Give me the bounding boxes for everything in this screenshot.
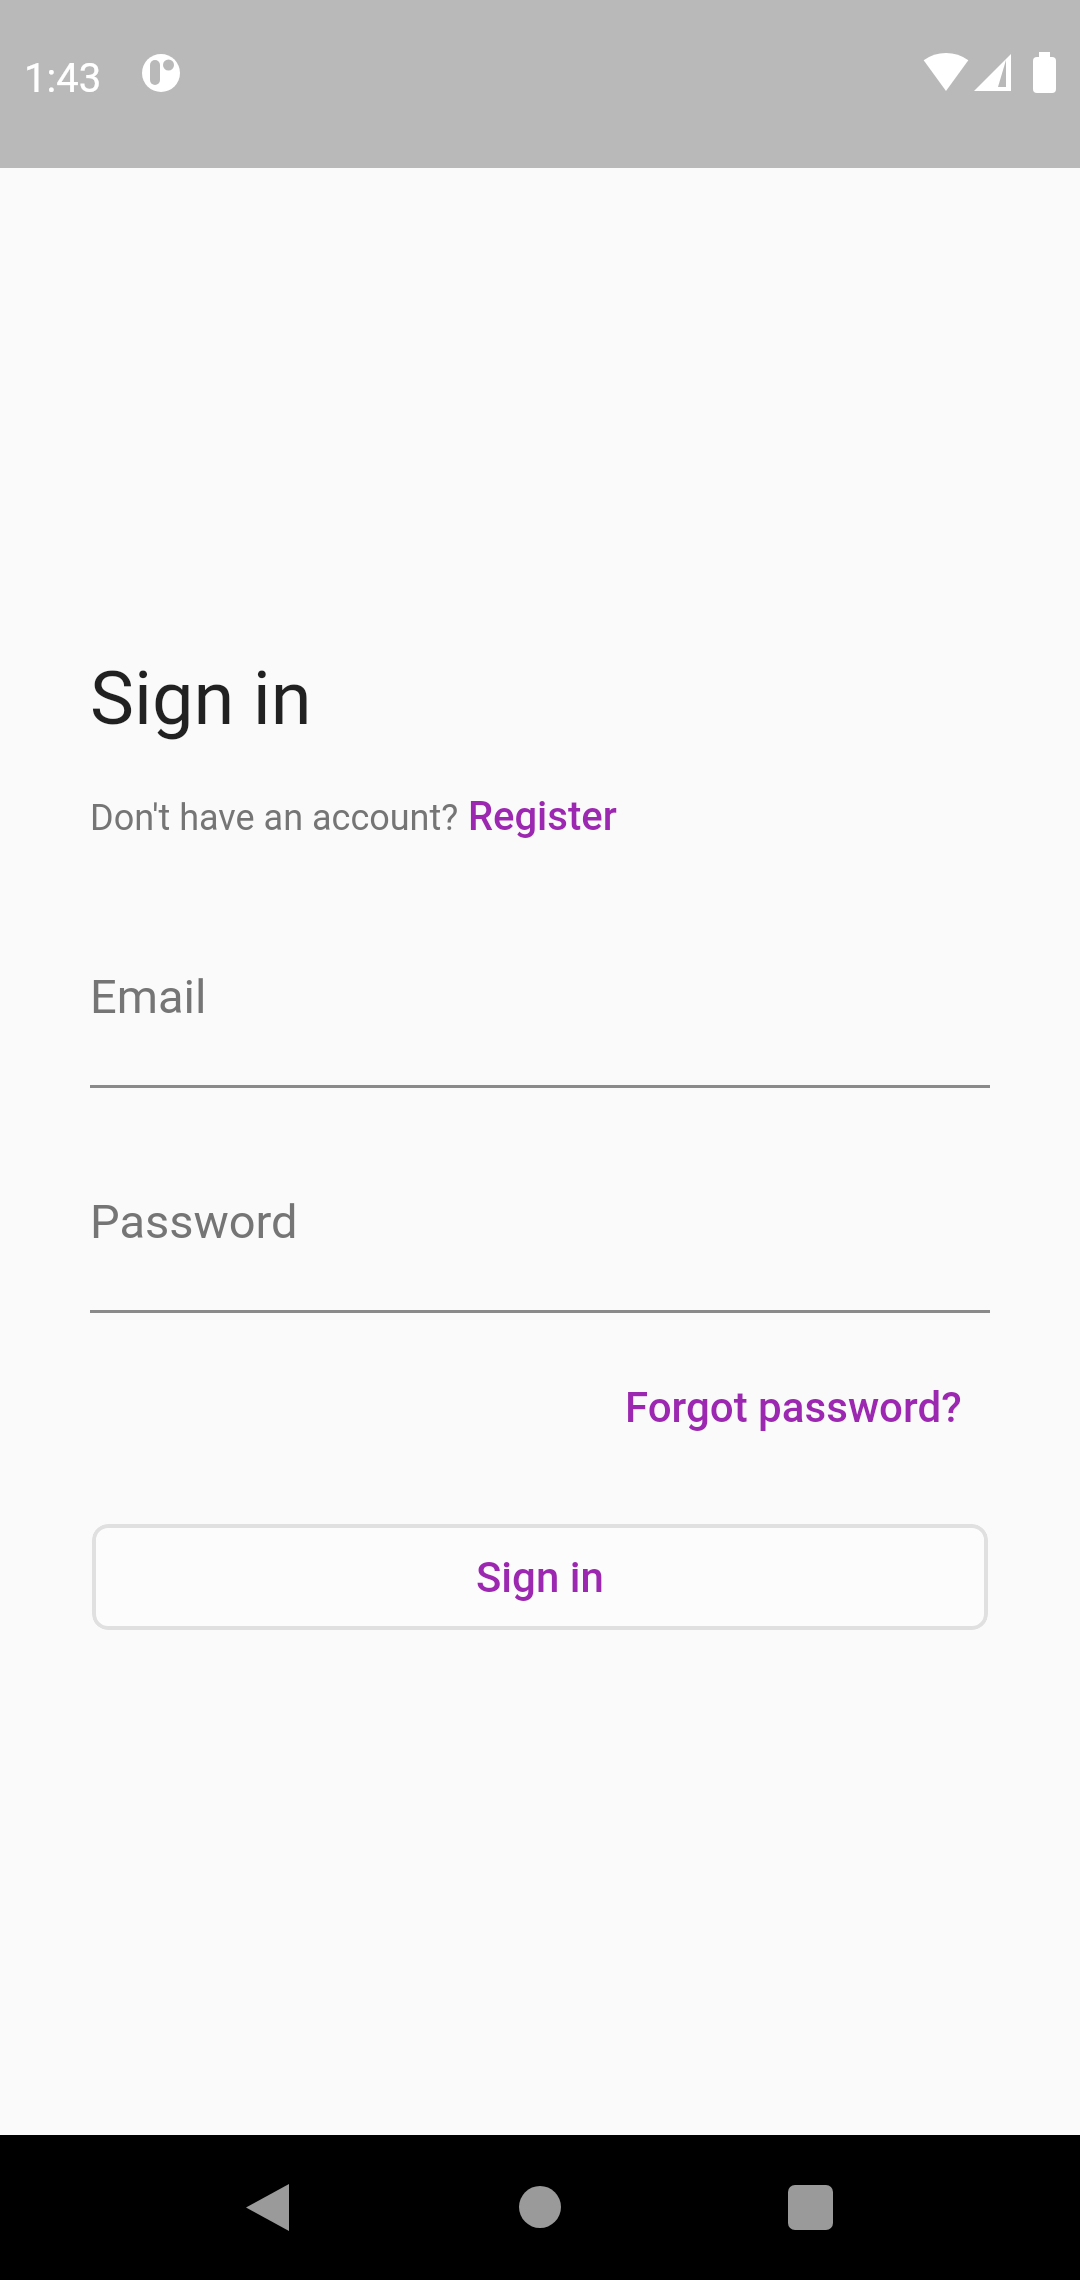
button[interactable]: Forgot password?	[625, 1383, 962, 1432]
button[interactable]: Sign in	[92, 1524, 988, 1630]
button[interactable]	[222, 2162, 312, 2252]
button[interactable]	[765, 2162, 855, 2252]
button[interactable]: Register	[468, 793, 617, 840]
button[interactable]: Email	[90, 969, 990, 1088]
staticText: 1:43	[24, 55, 102, 102]
staticText: Sign in	[90, 655, 312, 742]
button[interactable]	[495, 2162, 585, 2252]
staticText: Sign in	[476, 1553, 604, 1602]
staticText: Don't have an account?	[90, 797, 468, 839]
button[interactable]: Password	[90, 1194, 990, 1313]
staticText: Email	[90, 969, 207, 1024]
staticText: Password	[90, 1194, 298, 1249]
